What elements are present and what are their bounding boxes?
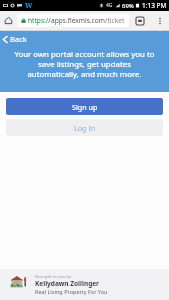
staticText: Brought to you by	[35, 273, 72, 279]
staticText: Back	[10, 34, 27, 44]
button[interactable]: Sign up	[6, 98, 163, 115]
staticText: Your own portal account allows you to sa…	[14, 49, 155, 79]
staticText: 4G	[106, 2, 113, 9]
staticText: /ticket	[105, 16, 125, 25]
button[interactable]: Home	[0, 11, 17, 30]
staticText: Sign up	[72, 102, 98, 112]
button[interactable]: https://	[17, 14, 129, 27]
staticText: Real Living Property For You	[35, 288, 108, 295]
button[interactable]: More options	[150, 11, 169, 30]
staticText: apps.flexmls.com	[51, 16, 105, 25]
staticText: 1:13 PM	[142, 1, 167, 10]
staticText: W	[25, 1, 33, 11]
button[interactable]: Tabs	[129, 11, 150, 30]
staticText: Log In	[74, 123, 96, 133]
button[interactable]: Back	[0, 31, 169, 47]
staticText: 69%	[122, 2, 134, 10]
staticText: Kellydawn Zollinger	[35, 279, 100, 288]
button[interactable]: Log In	[6, 119, 163, 136]
staticText: https://	[28, 16, 51, 25]
